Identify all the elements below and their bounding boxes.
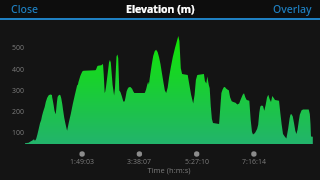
staticText: Time (h:m:s) [129, 165, 209, 175]
button[interactable]: Close [11, 2, 39, 16]
staticText: Overlay [273, 2, 312, 16]
staticText: 100 [12, 128, 25, 138]
staticText: Close [11, 2, 39, 16]
staticText: 3:38:07 [99, 157, 179, 167]
staticText: 5:27:10 [157, 157, 237, 167]
staticText: 400 [12, 65, 25, 75]
staticText: 7:16:14 [214, 157, 294, 167]
staticText: 200 [12, 107, 25, 117]
staticText: 1:49:03 [42, 157, 122, 167]
staticText: 300 [12, 86, 25, 96]
staticText: 500 [12, 43, 25, 53]
button[interactable]: Overlay [273, 2, 312, 16]
staticText: Elevation (m) [126, 2, 195, 16]
